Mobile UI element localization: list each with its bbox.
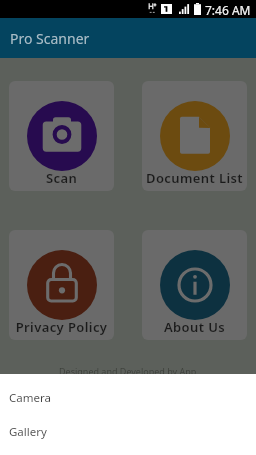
button[interactable]: Document List: [142, 81, 247, 191]
staticText: Document List: [142, 169, 247, 187]
button[interactable]: Gallery: [0, 415, 256, 449]
staticText: 7:46 AM: [205, 2, 251, 18]
staticText: Pro Scanner: [10, 29, 90, 48]
button[interactable]: About Us: [142, 230, 247, 340]
staticText: Scan: [9, 169, 114, 187]
staticText: Gallery: [9, 424, 47, 440]
staticText: Camera: [9, 390, 51, 406]
button[interactable]: Scan: [9, 81, 114, 191]
staticText: About Us: [142, 318, 247, 336]
button[interactable]: Privacy Policy: [9, 230, 114, 340]
staticText: Designed and Developed by App: [59, 365, 197, 377]
button[interactable]: Camera: [0, 381, 256, 415]
staticText: Privacy Policy: [9, 318, 114, 336]
